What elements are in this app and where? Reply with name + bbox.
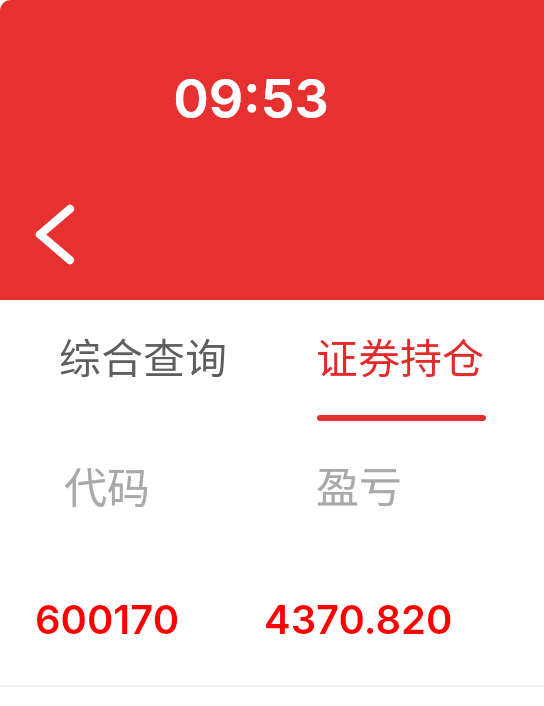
button[interactable]: 600170	[0, 550, 544, 685]
staticText: 盈亏	[316, 453, 402, 515]
staticText: 证券持仓	[316, 325, 485, 386]
staticText: 代码	[64, 454, 150, 516]
staticText: 4370.820	[264, 595, 453, 643]
button[interactable]: 综合查询	[0, 300, 272, 430]
staticText: 综合查询	[59, 325, 228, 386]
button[interactable]: 证券持仓	[272, 300, 544, 430]
staticText: 09:53	[173, 66, 329, 131]
button[interactable]: Back	[16, 194, 96, 274]
staticText: 600170	[35, 595, 180, 643]
